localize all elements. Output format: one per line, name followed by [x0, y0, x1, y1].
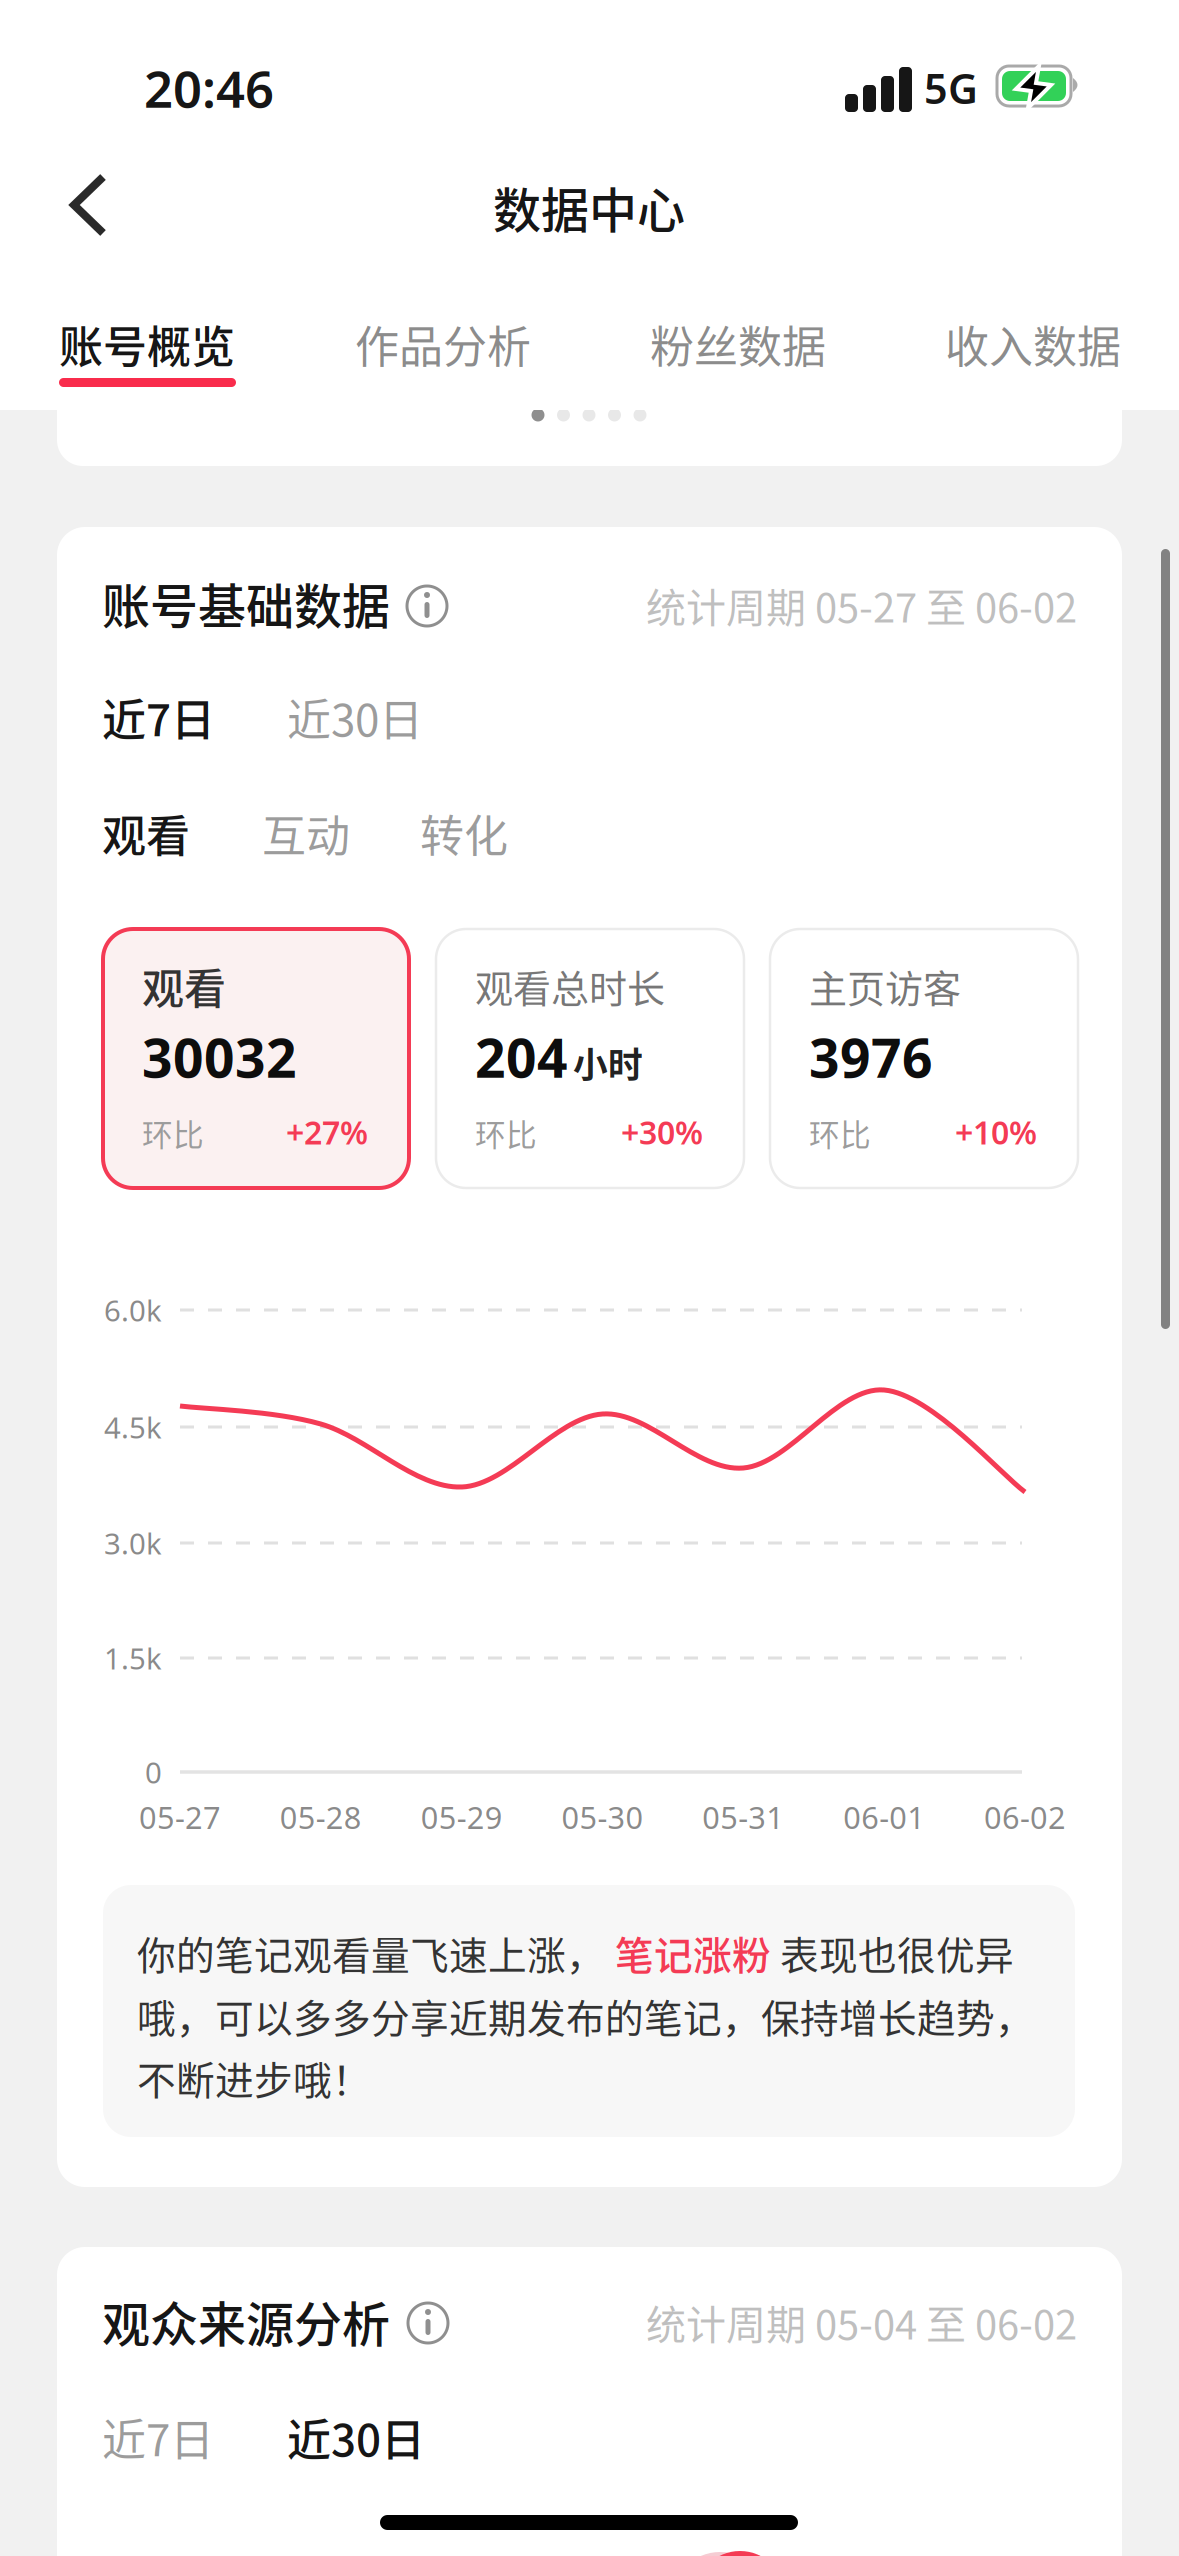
staticText: 3976	[809, 1022, 933, 1092]
button[interactable]: 观看	[102, 795, 222, 871]
staticText: 204	[475, 1022, 568, 1092]
staticText: 05-31	[702, 1797, 784, 1837]
button[interactable]: 近30日	[287, 2397, 467, 2477]
button[interactable]: 转化	[420, 795, 540, 871]
staticText: 4.5k	[104, 1407, 162, 1446]
staticText: 观众来源分析	[102, 2286, 390, 2356]
staticText: 表现也很优异	[771, 1925, 1014, 1981]
button[interactable]: 返回	[48, 165, 128, 245]
staticText: 6.0k	[104, 1290, 162, 1329]
button[interactable]: 近7日	[102, 2397, 262, 2477]
staticText: 统计周期 05-04 至 06-02	[646, 2293, 1077, 2351]
button[interactable]: 观众来源分析说明	[402, 2297, 454, 2349]
staticText: 近7日	[102, 685, 215, 749]
staticText: 粉丝数据	[650, 312, 826, 376]
staticText: 哦，可以多多分享近期发布的笔记，保持增长趋势，	[137, 1988, 1034, 2044]
staticText: +10%	[955, 1111, 1037, 1153]
staticText: 账号基础数据	[102, 568, 390, 638]
staticText: 06-02	[984, 1797, 1066, 1837]
button[interactable]: 互动	[262, 795, 382, 871]
staticText: 20:46	[144, 54, 274, 122]
staticText: 观看	[102, 801, 190, 865]
staticText: 主页访客	[809, 958, 961, 1013]
button[interactable]: 观看	[103, 929, 409, 1188]
staticText: +27%	[286, 1111, 368, 1153]
staticText: 05-29	[421, 1797, 503, 1837]
button[interactable]: 主页访客	[770, 929, 1078, 1188]
staticText: 05-30	[561, 1797, 643, 1837]
staticText: 环比	[475, 1111, 537, 1155]
staticText: 小时	[573, 1037, 643, 1088]
staticText: 转化	[420, 801, 508, 865]
staticText: 1.5k	[104, 1638, 162, 1677]
staticText: 环比	[809, 1111, 871, 1155]
button[interactable]: 收入数据	[913, 294, 1153, 394]
staticText: 笔记涨粉	[615, 1925, 771, 1981]
staticText: 收入数据	[945, 312, 1121, 376]
button[interactable]: 账号概览	[27, 294, 267, 394]
staticText: 06-01	[843, 1797, 925, 1837]
staticText: 互动	[262, 801, 350, 865]
button[interactable]: 观看总时长	[436, 929, 744, 1188]
staticText: 3.0k	[104, 1523, 162, 1562]
staticText: 05-28	[280, 1797, 362, 1837]
staticText: +30%	[621, 1111, 703, 1153]
staticText: 近30日	[287, 2405, 425, 2469]
staticText: 观看	[142, 956, 226, 1016]
staticText: 账号概览	[59, 312, 235, 376]
staticText: 05-27	[139, 1797, 221, 1837]
staticText: 5G	[924, 61, 978, 115]
staticText: 0	[145, 1752, 162, 1791]
staticText: 你的笔记观看量飞速上涨，	[137, 1925, 605, 1981]
staticText: 30032	[142, 1022, 297, 1092]
staticText: 不断进步哦！	[137, 2050, 371, 2106]
button[interactable]: 账号基础数据说明	[401, 580, 453, 632]
staticText: 统计周期 05-27 至 06-02	[646, 576, 1077, 634]
button[interactable]: 近7日	[102, 677, 262, 757]
staticText: 数据中心	[493, 172, 685, 242]
button[interactable]: 近30日	[287, 677, 467, 757]
staticText: 近7日	[102, 2405, 214, 2469]
staticText: 近30日	[287, 685, 423, 749]
staticText: 环比	[142, 1111, 204, 1155]
button[interactable]: 粉丝数据	[618, 294, 858, 394]
staticText: 观看总时长	[475, 958, 665, 1013]
staticText: 作品分析	[355, 312, 531, 376]
button[interactable]: 笔记涨粉	[605, 1925, 771, 1981]
button[interactable]: 作品分析	[323, 294, 563, 394]
